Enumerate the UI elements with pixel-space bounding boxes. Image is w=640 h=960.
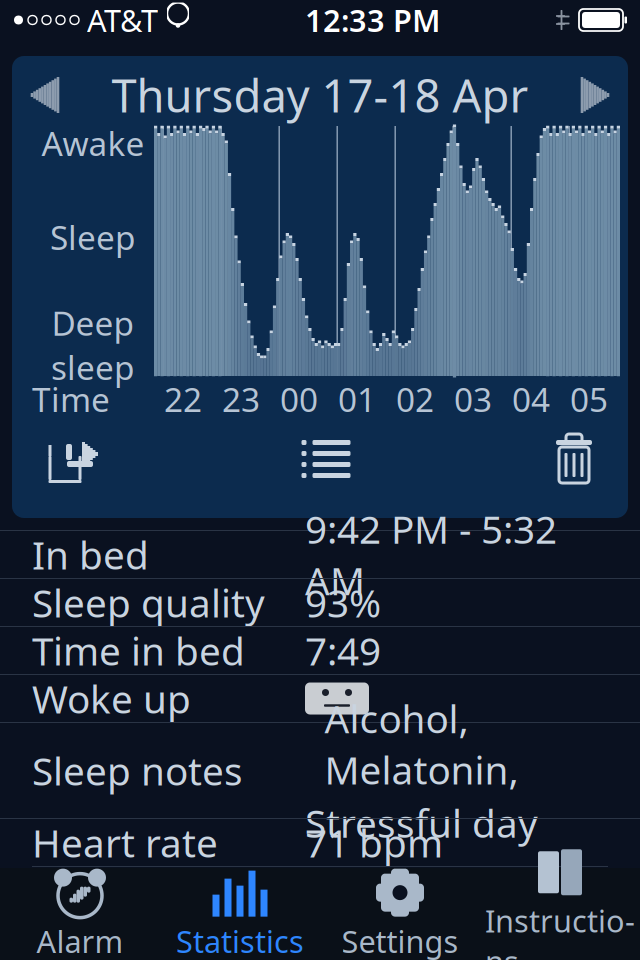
staticText: AT&T xyxy=(87,0,158,40)
staticText: Awake xyxy=(41,121,144,165)
staticText: In bed xyxy=(32,529,149,580)
staticText: Sleep xyxy=(50,215,136,259)
button[interactable]: List view xyxy=(286,429,366,489)
staticText: Heart rate xyxy=(32,817,218,868)
staticText: Settings xyxy=(341,921,458,960)
staticText: sleep xyxy=(51,345,135,389)
staticText: 23 xyxy=(222,377,260,421)
staticText: 7:49 xyxy=(305,625,381,676)
staticText: 00 xyxy=(280,377,318,421)
staticText: Sleep quality xyxy=(32,577,265,628)
staticText: 71 bpm xyxy=(305,817,443,868)
staticText: 01 xyxy=(338,377,376,421)
staticText: Sleep notes xyxy=(32,745,243,796)
staticText: Alarm xyxy=(36,921,123,960)
staticText: Instructions xyxy=(485,900,635,960)
staticText: 02 xyxy=(396,377,434,421)
button[interactable]: Previous night xyxy=(12,66,78,124)
staticText: Time in bed xyxy=(32,625,245,676)
staticText: Deep xyxy=(51,301,134,345)
staticText: Woke up xyxy=(32,673,191,724)
staticText: 22 xyxy=(164,377,202,421)
staticText: 05 xyxy=(570,377,608,421)
staticText: Stressful day xyxy=(305,797,538,848)
staticText: Thursday 17-18 Apr xyxy=(111,65,528,125)
button[interactable]: Statistics xyxy=(160,868,320,960)
staticText: 12:33 PM xyxy=(305,0,440,40)
button[interactable]: Settings xyxy=(320,868,480,960)
staticText: 03 xyxy=(454,377,492,421)
button[interactable]: Alarm xyxy=(0,868,160,960)
staticText: Time xyxy=(32,377,110,421)
staticText: 9:42 PM - 5:32 AM xyxy=(305,503,557,606)
button[interactable]: Delete xyxy=(538,430,610,488)
button[interactable]: Share xyxy=(30,427,114,491)
staticText: Statistics xyxy=(176,921,304,960)
staticText: 04 xyxy=(512,377,550,421)
staticText: 93% xyxy=(305,577,381,628)
button[interactable]: Instructions xyxy=(480,868,640,960)
button[interactable]: Next night xyxy=(562,66,628,124)
staticText: Alcohol, Melatonin, xyxy=(324,692,518,795)
